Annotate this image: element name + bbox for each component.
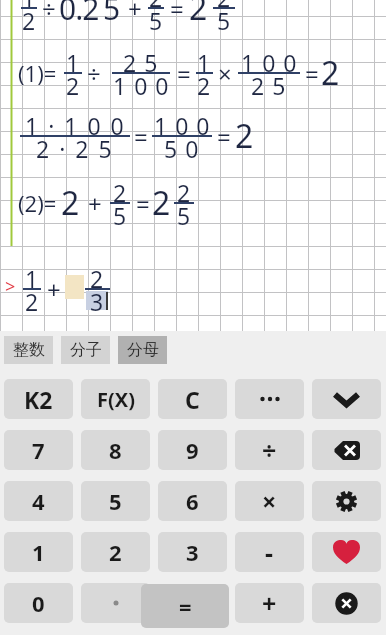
staticText: 2	[235, 114, 254, 158]
staticText: =	[170, 0, 184, 25]
staticText: 0.2	[59, 0, 99, 29]
staticText: >	[5, 274, 16, 299]
staticText: ÷	[87, 57, 101, 90]
staticText: 3	[90, 286, 105, 317]
staticText: C	[185, 384, 200, 415]
staticText: 4	[32, 486, 45, 516]
staticText: +	[262, 586, 277, 620]
staticText: 2	[197, 70, 212, 101]
button[interactable]: 整数	[4, 336, 53, 364]
staticText: 5	[177, 200, 192, 231]
staticText: 2	[149, 0, 164, 13]
staticText: 1 0 0	[113, 70, 170, 101]
staticText: 2	[90, 263, 105, 294]
staticText: +	[88, 187, 102, 220]
staticText: ÷	[262, 433, 277, 467]
staticText: 2	[109, 537, 122, 567]
button[interactable]: 4	[4, 481, 73, 521]
button[interactable]: +	[235, 583, 304, 623]
staticText: 5	[217, 5, 232, 36]
staticText: +	[47, 273, 61, 306]
staticText: K2	[24, 384, 53, 415]
button[interactable]: 8	[81, 430, 150, 470]
staticText: 2 5	[251, 70, 287, 101]
staticText: 1	[22, 0, 37, 13]
staticText: 2	[217, 0, 232, 13]
staticText: 分子	[70, 340, 102, 360]
staticText: (2)=	[18, 188, 57, 218]
staticText: 3	[186, 537, 199, 567]
staticText: 整数	[13, 340, 45, 360]
staticText: 2 · 2 5	[36, 133, 114, 164]
staticText: 5	[103, 0, 121, 29]
staticText: +	[128, 0, 142, 25]
staticText: 1	[32, 537, 45, 567]
staticText: 1 0 0	[241, 47, 298, 78]
button[interactable]	[312, 532, 381, 572]
staticText: 2	[66, 70, 81, 101]
staticText: =	[136, 187, 150, 220]
staticText: 2	[113, 177, 128, 208]
button[interactable]	[312, 379, 381, 419]
staticText: 1	[66, 47, 81, 78]
staticText: 5	[109, 486, 122, 516]
staticText: 1	[25, 263, 40, 294]
staticText: 5 0	[164, 133, 200, 164]
button[interactable]	[312, 481, 381, 521]
staticText: ×	[262, 484, 277, 518]
staticText: =	[305, 57, 319, 90]
staticText: 8	[109, 435, 122, 465]
staticText: 2	[189, 0, 208, 30]
button[interactable]: K2	[4, 379, 73, 419]
button[interactable]: 5	[81, 481, 150, 521]
staticText: 5	[113, 200, 128, 231]
button[interactable]: ×	[235, 481, 304, 521]
button[interactable]: 分母	[118, 336, 167, 364]
staticText: 1	[197, 47, 212, 78]
staticText: 5	[149, 5, 164, 36]
staticText: 7	[32, 435, 45, 465]
staticText: =	[179, 591, 192, 621]
button[interactable]	[81, 583, 150, 623]
staticText: 0	[32, 588, 45, 618]
button[interactable]	[312, 583, 381, 623]
staticText: ×	[218, 57, 232, 90]
staticText: 分母	[127, 340, 159, 360]
button[interactable]: 1	[4, 532, 73, 572]
button[interactable]	[312, 430, 381, 470]
button[interactable]: 6	[158, 481, 227, 521]
button[interactable]: =	[141, 584, 229, 628]
button[interactable]: 2	[81, 532, 150, 572]
staticText: 9	[186, 435, 199, 465]
staticText: 2	[321, 51, 340, 95]
button[interactable]: ÷	[235, 430, 304, 470]
staticText: 2	[61, 181, 80, 225]
button[interactable]: 9	[158, 430, 227, 470]
staticText: 6	[186, 486, 199, 516]
staticText: 1 · 1 0 0	[25, 110, 126, 141]
staticText: F(X)	[97, 386, 135, 413]
staticText: (1)=	[18, 58, 57, 88]
button[interactable]: F(X)	[81, 379, 150, 419]
button[interactable]: 分子	[61, 336, 110, 364]
button[interactable]: 0	[4, 583, 73, 623]
button[interactable]: -	[235, 532, 304, 572]
staticText: =	[134, 120, 148, 153]
staticText: ÷	[42, 0, 56, 25]
staticText: 1 0 0	[154, 110, 211, 141]
button[interactable]: 3	[158, 532, 227, 572]
staticText: 2 5	[123, 47, 159, 78]
staticText: -	[265, 535, 274, 569]
staticText: 2	[152, 181, 171, 225]
staticText: 2	[22, 5, 37, 36]
staticText: 2	[177, 177, 192, 208]
button[interactable]: C	[158, 379, 227, 419]
staticText: 2	[25, 286, 40, 317]
button[interactable]: 7	[4, 430, 73, 470]
button[interactable]	[235, 379, 304, 419]
staticText: =	[177, 57, 191, 90]
staticText: =	[217, 120, 231, 153]
